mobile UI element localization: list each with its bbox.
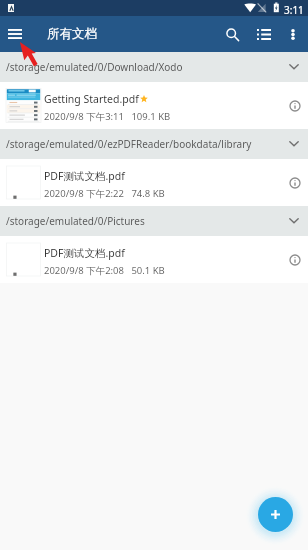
button[interactable]: More options [280, 21, 306, 47]
button[interactable]: Getting Started.pdf [0, 82, 308, 129]
staticText: /storage/emulated/0/Pictures [6, 214, 145, 228]
button[interactable]: Info [279, 169, 307, 197]
staticText: Getting Started.pdf [44, 92, 139, 106]
button[interactable]: Search [218, 20, 246, 48]
staticText: PDF测试文档.pdf [44, 169, 125, 183]
button[interactable]: Info [279, 92, 307, 120]
button[interactable]: Add [258, 497, 293, 532]
staticText: 2020/9/8 下午3:11 109.1 KB [44, 110, 171, 123]
button[interactable]: /storage/emulated/0/Pictures [0, 206, 308, 236]
staticText: 2020/9/8 下午2:22 74.8 KB [44, 187, 165, 200]
button[interactable]: /storage/emulated/0/Download/Xodo [0, 52, 308, 82]
button[interactable]: /storage/emulated/0/ezPDFReader/bookdata… [0, 129, 308, 159]
staticText: PDF测试文档.pdf [44, 246, 125, 260]
staticText: 2020/9/8 下午2:08 50.1 KB [44, 264, 165, 277]
staticText: 所有文档 [47, 26, 97, 42]
button[interactable]: PDF测试文档.pdf [0, 236, 308, 283]
button[interactable]: PDF测试文档.pdf [0, 159, 308, 206]
staticText: /storage/emulated/0/ezPDFReader/bookdata… [6, 137, 252, 151]
button[interactable]: Info [279, 246, 307, 274]
button[interactable]: List view [250, 20, 278, 48]
button[interactable]: Menu [0, 19, 30, 49]
staticText: /storage/emulated/0/Download/Xodo [6, 60, 183, 74]
staticText: 3:11 [284, 3, 304, 17]
